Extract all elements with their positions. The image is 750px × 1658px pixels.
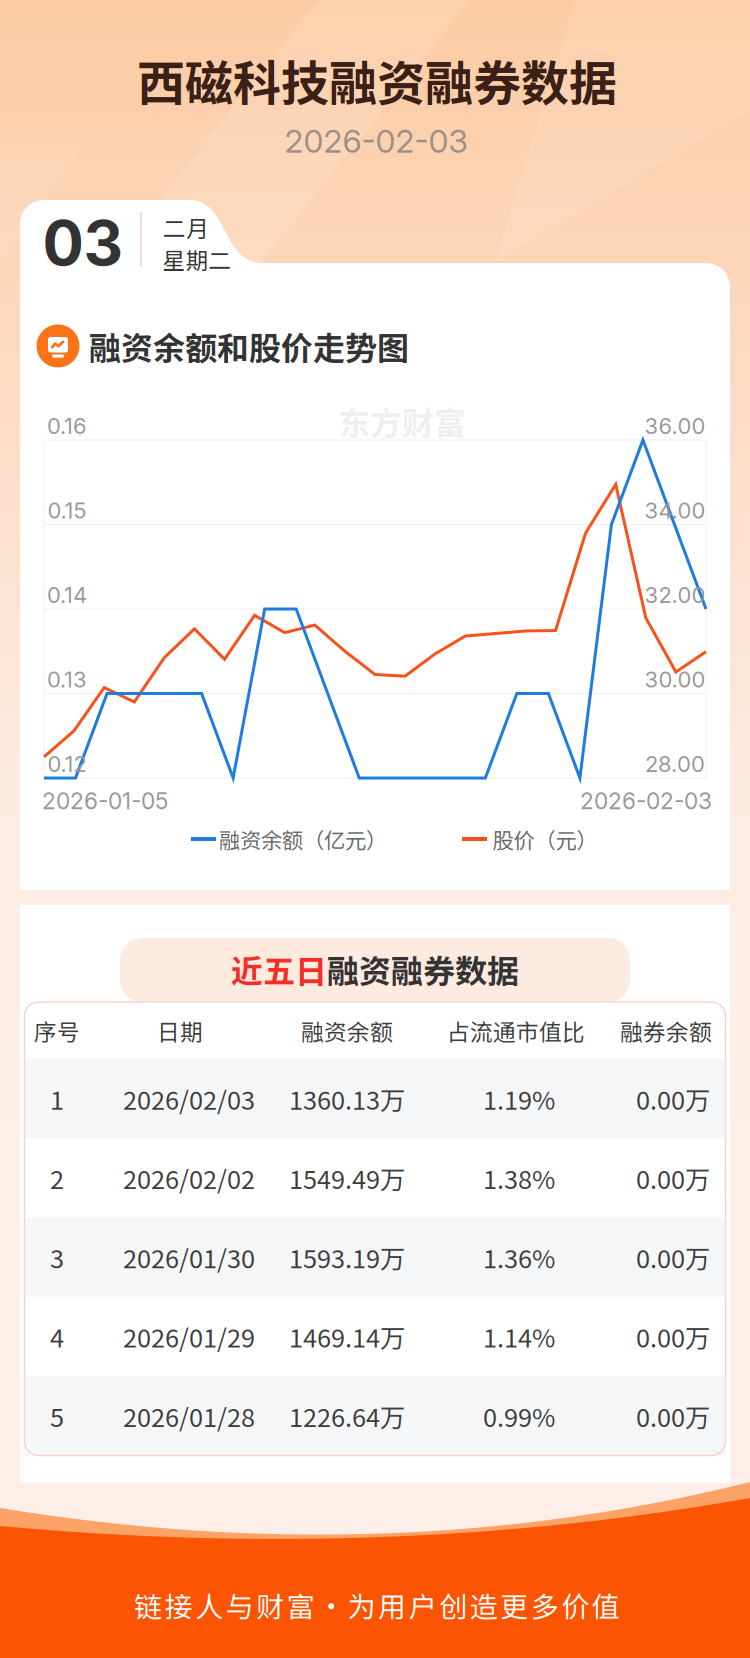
staticText: 0.00万 [636, 1318, 710, 1355]
staticText: 融资余额（亿元） [219, 824, 387, 854]
staticText: 2026/01/28 [123, 1397, 255, 1434]
staticText: 0.00万 [636, 1080, 710, 1117]
staticText: 二月 [163, 211, 209, 243]
staticText: 0.00万 [636, 1160, 710, 1196]
staticText: 2026-02-03 [284, 122, 467, 160]
staticText: 融资余额和股价走势图 [89, 323, 409, 369]
staticText: 序号 [34, 1014, 80, 1047]
staticText: 1.14% [483, 1318, 555, 1355]
staticText: 股价（元） [492, 824, 597, 854]
staticText: 32.00 [644, 582, 705, 608]
staticText: 链接人与财富·为用户创造更多价值 [134, 1585, 620, 1625]
staticText: 0.15 [47, 497, 86, 524]
staticText: 日期 [157, 1014, 203, 1047]
staticText: 30.00 [644, 666, 705, 693]
staticText: 2026/02/03 [123, 1080, 255, 1117]
staticText: 2026-02-03 [580, 787, 712, 815]
staticText: 1469.14万 [289, 1318, 405, 1355]
staticText: 03 [42, 206, 123, 280]
staticText: 4 [50, 1318, 64, 1355]
staticText: 0.13 [47, 666, 87, 693]
staticText: 1.19% [483, 1080, 555, 1117]
staticText: 2 [50, 1160, 64, 1196]
staticText: 2026/01/30 [123, 1239, 255, 1276]
staticText: 2026/01/29 [123, 1318, 255, 1355]
staticText: 东方财富 [338, 398, 466, 444]
staticText: 占流通市值比 [447, 1014, 585, 1047]
staticText: 5 [50, 1397, 64, 1434]
staticText: 1226.64万 [289, 1397, 405, 1434]
staticText: 34.00 [644, 497, 705, 524]
staticText: 0.00万 [636, 1397, 710, 1434]
staticText: 28.00 [645, 751, 705, 777]
staticText: 1360.13万 [289, 1080, 405, 1117]
staticText: 2026/02/02 [123, 1160, 255, 1196]
staticText: 融资余额 [301, 1014, 393, 1047]
staticText: 1.36% [483, 1239, 555, 1276]
staticText: 2026-01-05 [42, 787, 168, 815]
staticText: 0.12 [47, 751, 86, 777]
staticText: 3 [50, 1239, 64, 1276]
staticText: 1549.49万 [289, 1160, 405, 1196]
staticText: 融资融券数据 [327, 946, 519, 992]
staticText: 近五日 [231, 946, 327, 992]
staticText: 1 [50, 1080, 64, 1117]
staticText: 1593.19万 [289, 1239, 405, 1276]
staticText: 0.16 [47, 413, 87, 439]
staticText: 36.00 [644, 413, 705, 439]
staticText: 0.00万 [636, 1239, 710, 1276]
staticText: 西磁科技融资融券数据 [137, 45, 617, 115]
staticText: 融券余额 [620, 1014, 712, 1047]
staticText: 星期二 [162, 243, 231, 275]
staticText: 1.38% [483, 1160, 555, 1196]
staticText: 0.99% [483, 1397, 555, 1434]
staticText: 0.14 [47, 582, 87, 608]
